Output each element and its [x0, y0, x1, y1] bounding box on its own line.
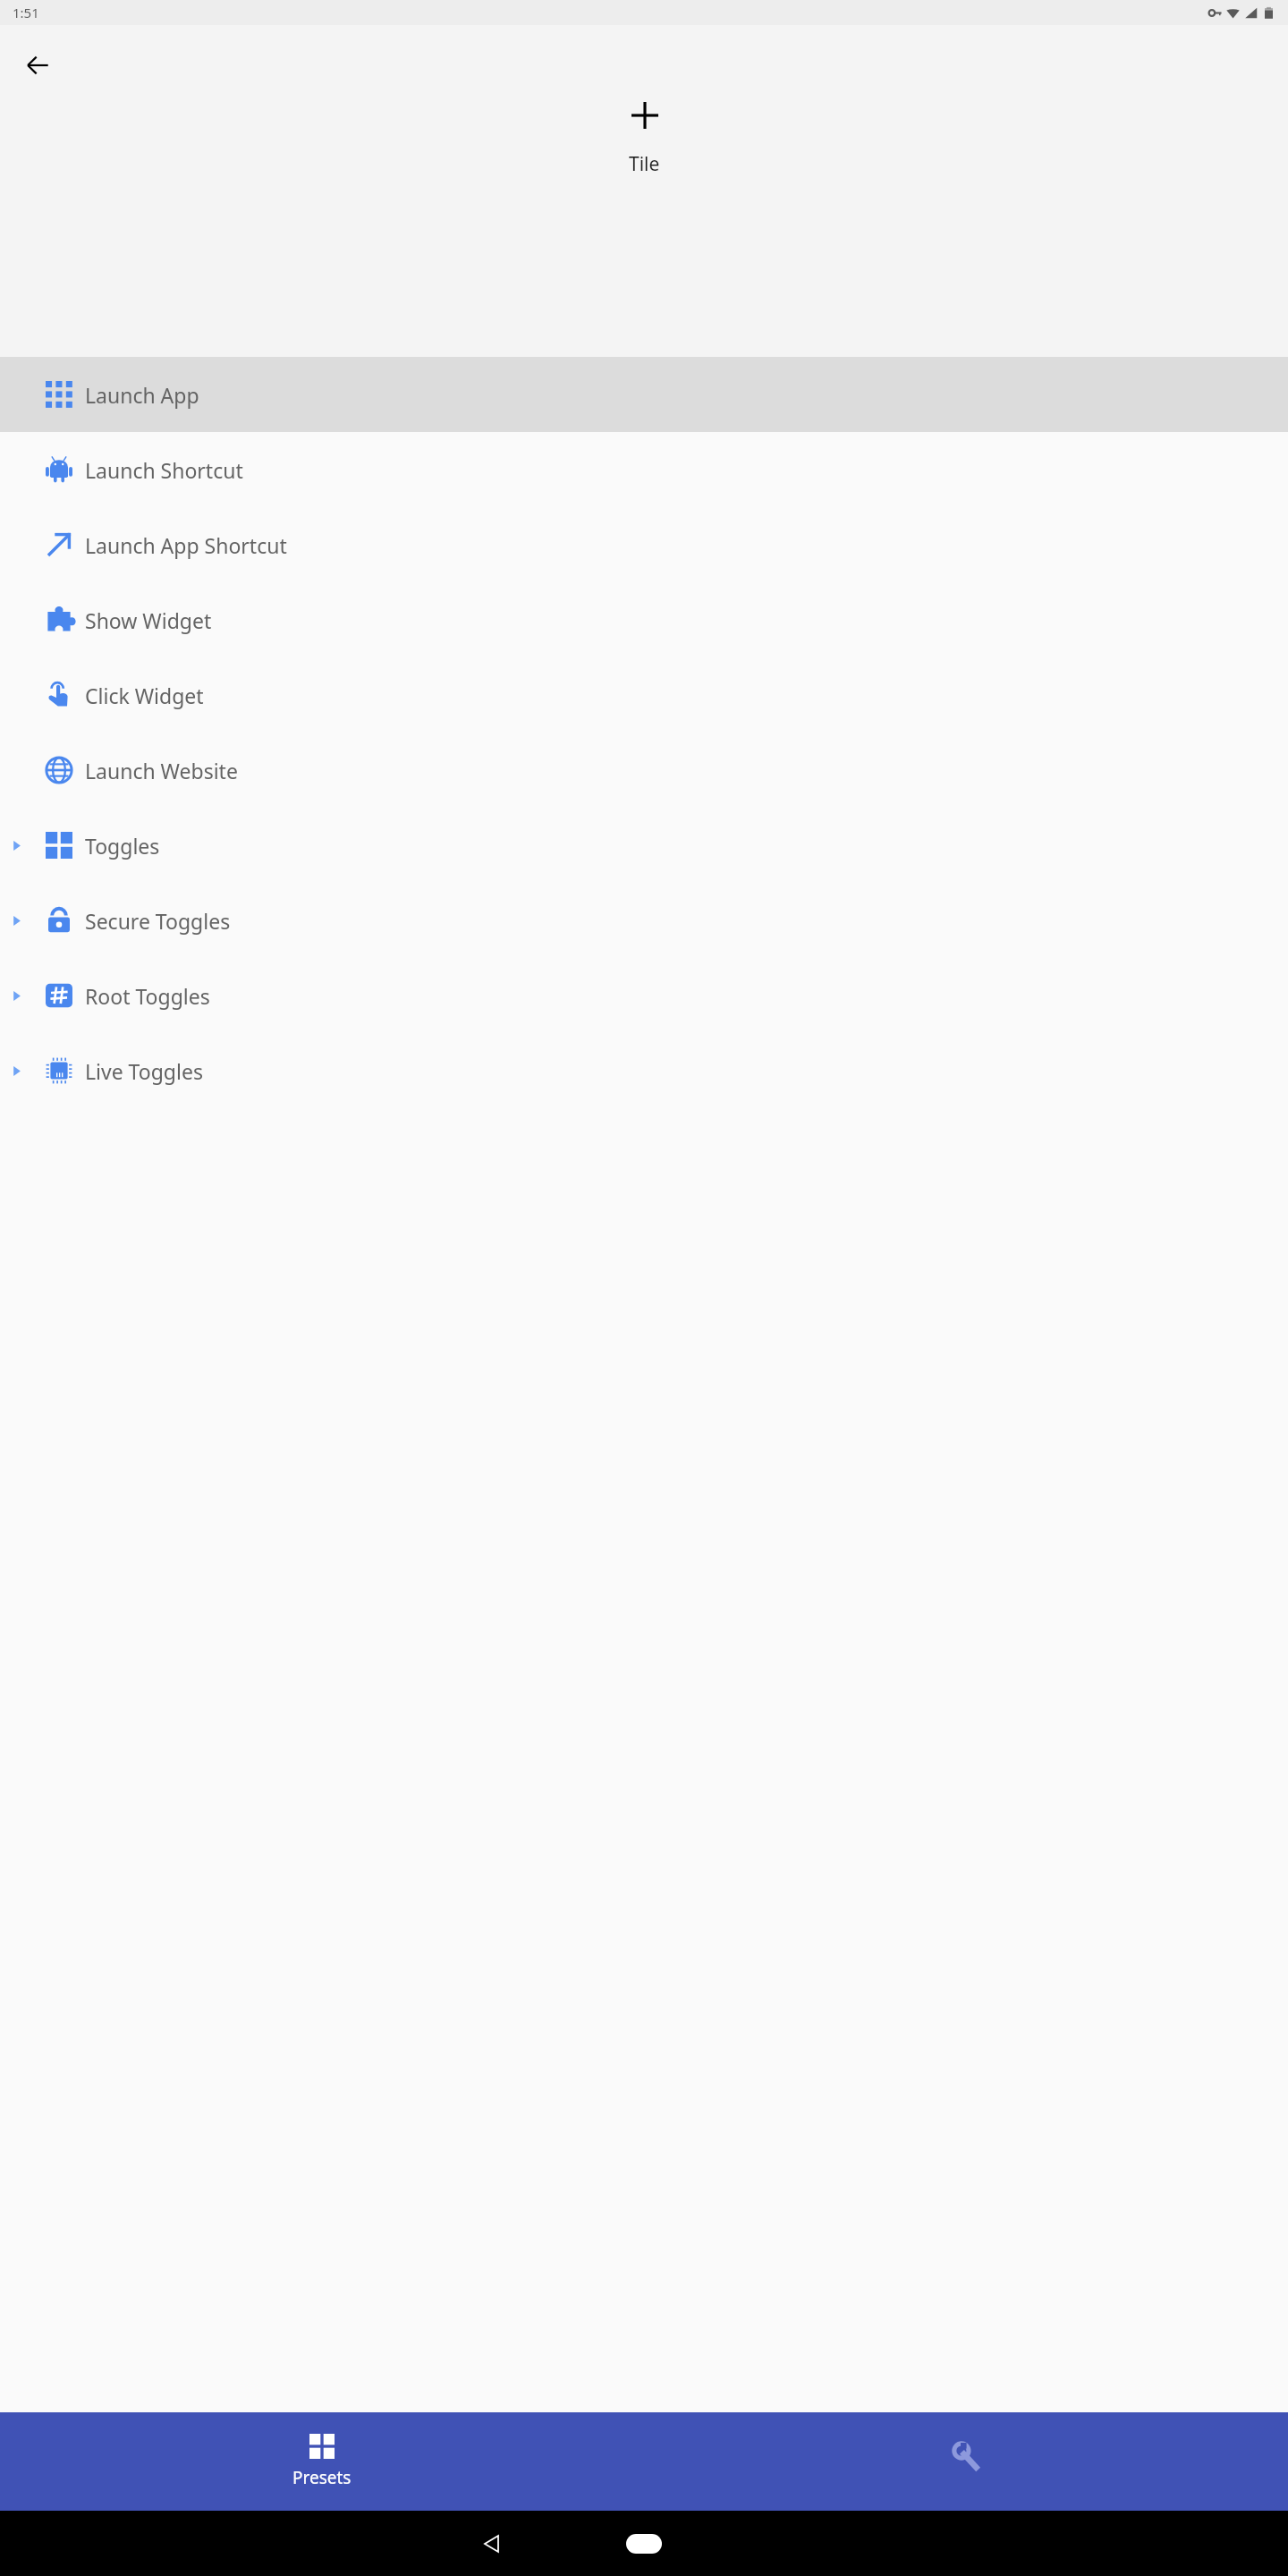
button[interactable]: Click Widget: [0, 657, 1288, 733]
button[interactable]: Back: [13, 40, 63, 90]
staticText: Launch Shortcut: [85, 456, 243, 484]
button[interactable]: Toggles: [0, 808, 1288, 883]
staticText: Secure Toggles: [85, 907, 231, 935]
staticText: Launch App Shortcut: [85, 531, 287, 559]
button[interactable]: Launch Shortcut: [0, 432, 1288, 507]
staticText: Presets: [292, 2466, 352, 2489]
staticText: Launch App: [85, 381, 199, 409]
button[interactable]: Tile: [629, 102, 660, 177]
button[interactable]: Presets: [0, 2412, 644, 2511]
button[interactable]: Show Widget: [0, 582, 1288, 657]
staticText: Toggles: [85, 832, 160, 860]
button[interactable]: Secure Toggles: [0, 883, 1288, 958]
staticText: Root Toggles: [85, 982, 210, 1010]
staticText: Click Widget: [85, 682, 204, 709]
staticText: 1:51: [13, 4, 39, 21]
button[interactable]: Launch App: [0, 357, 1288, 432]
staticText: Launch Website: [85, 757, 238, 784]
button[interactable]: Live Toggles: [0, 1033, 1288, 1108]
staticText: Tile: [629, 151, 660, 177]
button[interactable]: Settings: [644, 2412, 1288, 2511]
button[interactable]: Root Toggles: [0, 958, 1288, 1033]
button[interactable]: Launch Website: [0, 733, 1288, 808]
staticText: Show Widget: [85, 606, 212, 634]
button[interactable]: Launch App Shortcut: [0, 507, 1288, 582]
staticText: Live Toggles: [85, 1057, 203, 1085]
